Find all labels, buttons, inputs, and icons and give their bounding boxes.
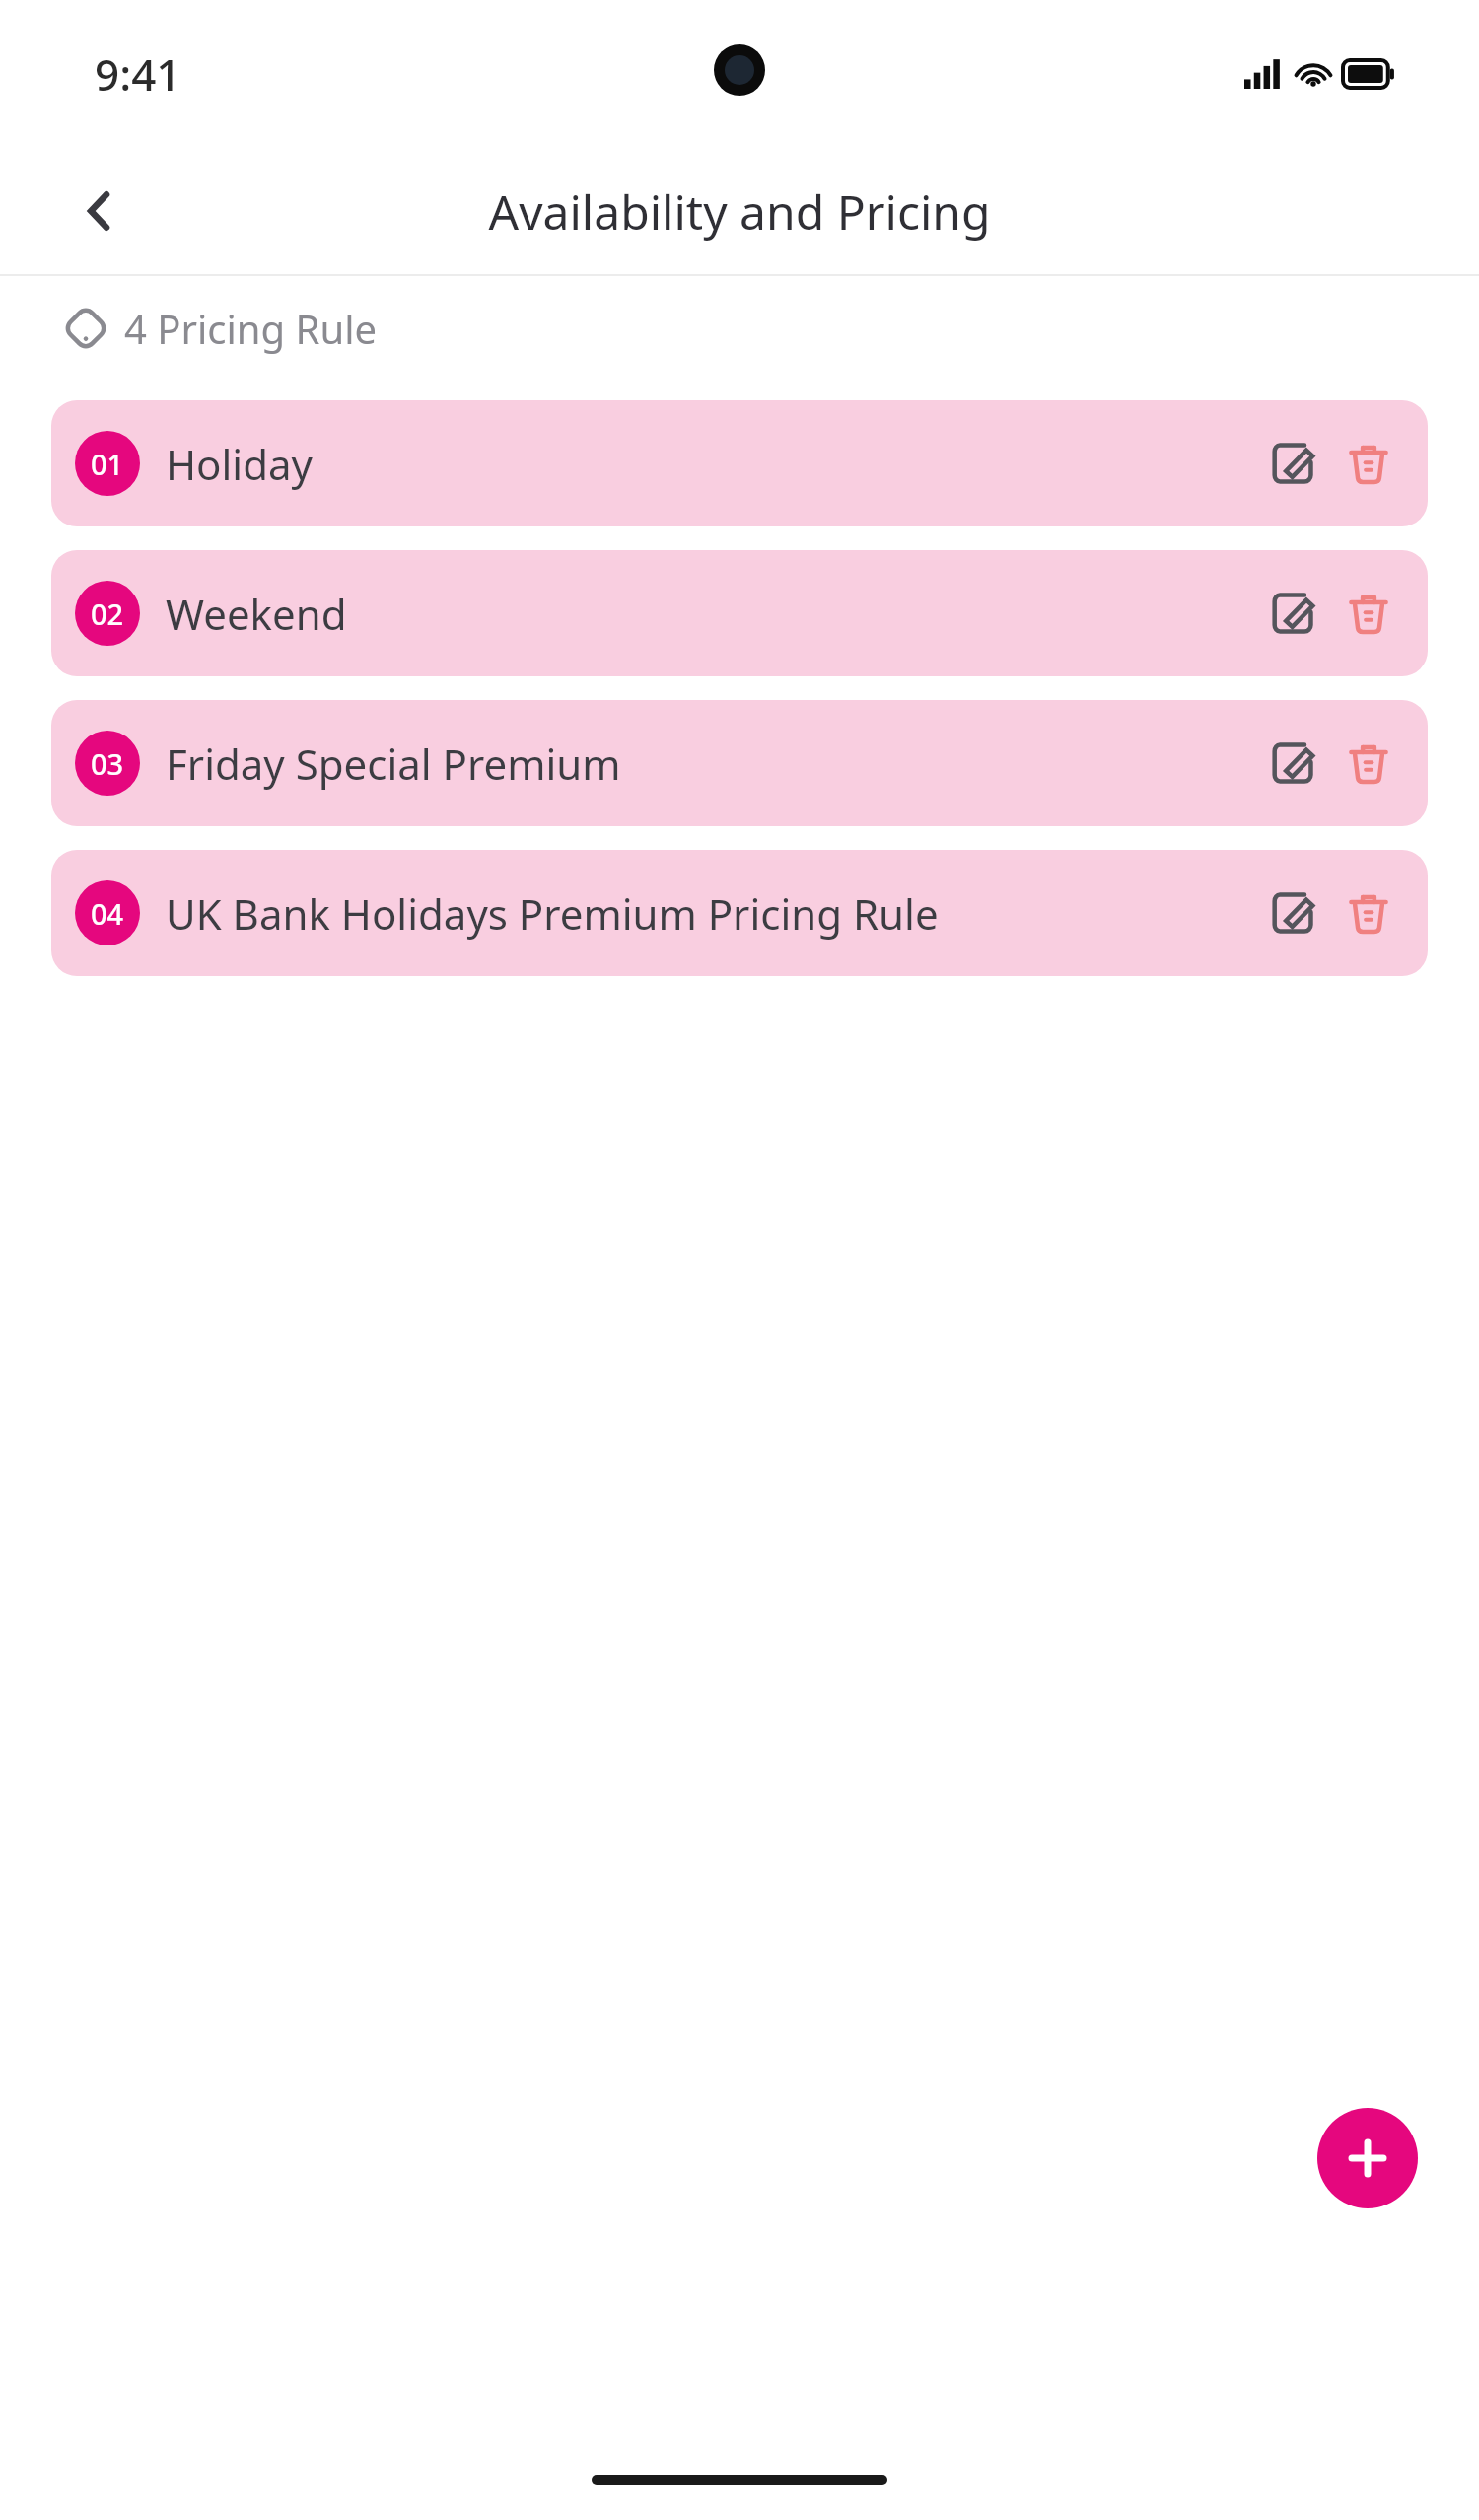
button[interactable]: 02 [51,550,1428,676]
button[interactable]: Add pricing rule [1317,2108,1418,2208]
staticText: 03 [91,744,124,783]
button[interactable]: 04 [51,850,1428,976]
button[interactable]: Delete [1333,578,1404,649]
staticText: Weekend [166,586,347,642]
staticText: 4 Pricing Rule [124,302,378,355]
staticText: Availability and Pricing [488,179,991,244]
button[interactable]: 03 [51,700,1428,826]
staticText: 02 [91,595,124,633]
button[interactable]: Edit [1258,428,1329,499]
button[interactable]: Edit [1258,728,1329,799]
button[interactable]: Delete [1333,728,1404,799]
button[interactable]: Back [61,173,138,249]
staticText: 01 [91,445,124,483]
button[interactable]: 01 [51,400,1428,526]
button[interactable]: Delete [1333,428,1404,499]
button[interactable]: Edit [1258,877,1329,948]
staticText: UK Bank Holidays Premium Pricing Rule [166,885,939,942]
staticText: Holiday [166,436,314,492]
staticText: 9:41 [95,44,181,104]
staticText: Friday Special Premium [166,735,621,792]
button[interactable]: Delete [1333,877,1404,948]
staticText: 04 [91,894,124,933]
button[interactable]: Edit [1258,578,1329,649]
